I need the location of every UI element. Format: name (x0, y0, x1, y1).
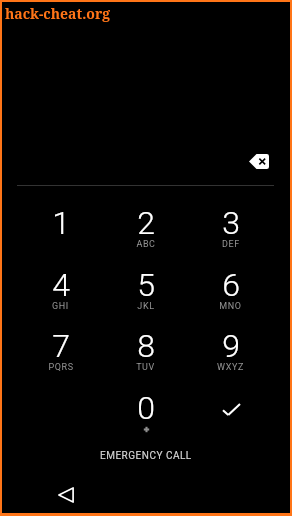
staticText: DEF (222, 239, 240, 250)
button[interactable]: 4 (18, 266, 103, 328)
button[interactable]: Delete (241, 145, 277, 177)
staticText: 8 (137, 327, 155, 361)
button[interactable]: 9 (188, 327, 273, 389)
button[interactable]: 7 (18, 327, 103, 389)
staticText: 4 (52, 266, 70, 300)
staticText: TUV (136, 362, 155, 373)
staticText: 0 (137, 389, 155, 423)
staticText: 6 (222, 266, 240, 300)
button[interactable]: EMERGENCY CALL (2, 445, 290, 467)
button[interactable]: Back (49, 479, 81, 511)
button[interactable]: 1 (18, 204, 103, 266)
button[interactable]: 3 (188, 204, 273, 266)
staticText: 7 (52, 327, 70, 361)
button[interactable]: 0 (103, 389, 188, 451)
staticText: GHI (52, 301, 69, 312)
button[interactable]: 8 (103, 327, 188, 389)
staticText: 5 (137, 266, 155, 300)
staticText: 1 (52, 204, 70, 238)
staticText: EMERGENCY CALL (100, 450, 192, 462)
staticText: ABC (136, 239, 156, 250)
button[interactable]: 5 (103, 266, 188, 328)
staticText: PQRS (48, 362, 74, 373)
staticText: MNO (219, 301, 242, 312)
button[interactable]: Confirm (188, 389, 273, 451)
staticText: 9 (222, 327, 240, 361)
staticText: WXYZ (217, 362, 244, 373)
button[interactable]: 2 (103, 204, 188, 266)
staticText: JKL (137, 301, 155, 312)
staticText: 3 (222, 204, 240, 238)
button[interactable]: 6 (188, 266, 273, 328)
staticText: 2 (137, 204, 155, 238)
staticText: hack-cheat.org (5, 4, 111, 23)
